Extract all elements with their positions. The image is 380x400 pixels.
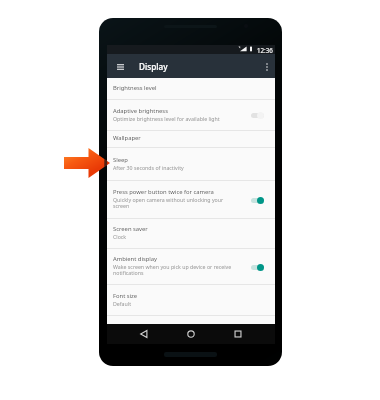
button[interactable]: Home [184,327,198,341]
button[interactable]: Toggle setting [250,195,265,205]
staticText: Press power button twice for camera [113,188,214,196]
button[interactable]: Back [137,327,151,341]
button[interactable]: Adaptive brightness [107,100,275,130]
button[interactable]: Toggle setting [250,110,265,120]
button[interactable]: Wallpaper [107,131,275,147]
button[interactable]: Toggle setting [250,262,265,272]
staticText: 12:36 [257,46,273,54]
button[interactable]: Sleep [107,148,275,180]
staticText: Optimize brightness level for available … [113,115,220,122]
staticText: Brightness level [113,84,157,92]
staticText: Quickly open camera without unlocking yo… [113,196,234,210]
button[interactable]: Font size [107,285,275,315]
button[interactable]: Brightness level [107,78,275,99]
staticText: Default [113,300,132,307]
button[interactable]: Screen saver [107,219,275,248]
button[interactable]: More options [259,59,274,74]
button[interactable]: Open navigation menu [113,59,128,74]
staticText: Wake screen when you pick up device or r… [113,263,234,277]
staticText: After 30 seconds of inactivity [113,164,184,171]
staticText: Screen saver [113,225,148,233]
staticText: Sleep [113,156,128,164]
staticText: Font size [113,292,138,300]
staticText: Wallpaper [113,134,141,142]
staticText: Adaptive brightness [113,107,168,115]
staticText: Display [139,61,168,72]
button[interactable]: Ambient display [107,249,275,284]
staticText: Clock [113,233,127,240]
button[interactable]: Press power button twice for camera [107,181,275,218]
button[interactable]: Recent apps [231,327,245,341]
staticText: Ambient display [113,255,158,263]
